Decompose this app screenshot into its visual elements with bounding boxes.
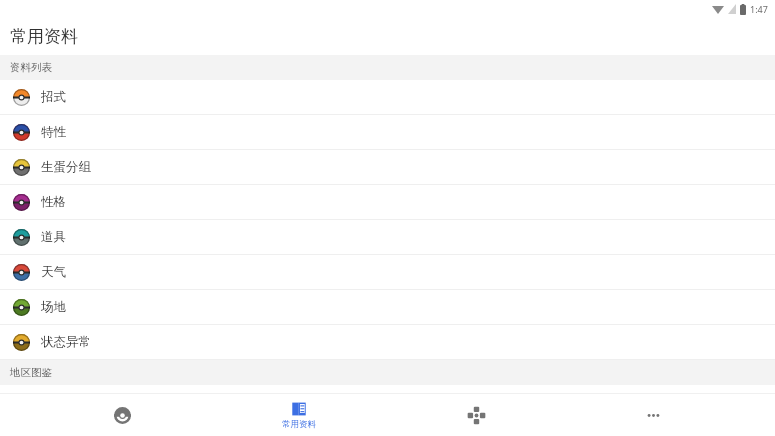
staticText: 常用资料 bbox=[10, 26, 78, 47]
staticText: 生蛋分组 bbox=[41, 159, 91, 175]
button[interactable]: 特性 bbox=[0, 115, 775, 149]
button[interactable]: 道具 bbox=[0, 220, 775, 254]
button[interactable]: 更多 bbox=[598, 394, 708, 436]
staticText: 天气 bbox=[41, 264, 66, 280]
button[interactable]: 对战 bbox=[421, 394, 531, 436]
button[interactable]: 场地 bbox=[0, 290, 775, 324]
button[interactable]: 生蛋分组 bbox=[0, 150, 775, 184]
staticText: 特性 bbox=[41, 124, 66, 140]
staticText: 状态异常 bbox=[41, 334, 91, 350]
button[interactable]: 性格 bbox=[0, 185, 775, 219]
button[interactable]: 招式 bbox=[0, 80, 775, 114]
staticText: 资料列表 bbox=[10, 61, 52, 74]
staticText: 1:47 bbox=[750, 3, 768, 15]
staticText: 地区图鉴 bbox=[10, 366, 52, 379]
button[interactable]: 图鉴 bbox=[67, 394, 177, 436]
button[interactable]: 天气 bbox=[0, 255, 775, 289]
staticText: 道具 bbox=[41, 229, 66, 245]
button[interactable]: 常用资料 bbox=[244, 394, 354, 436]
staticText: 场地 bbox=[41, 299, 66, 315]
staticText: 性格 bbox=[41, 194, 66, 210]
staticText: 常用资料 bbox=[282, 419, 316, 430]
staticText: 招式 bbox=[41, 89, 66, 105]
button[interactable]: 状态异常 bbox=[0, 325, 775, 359]
